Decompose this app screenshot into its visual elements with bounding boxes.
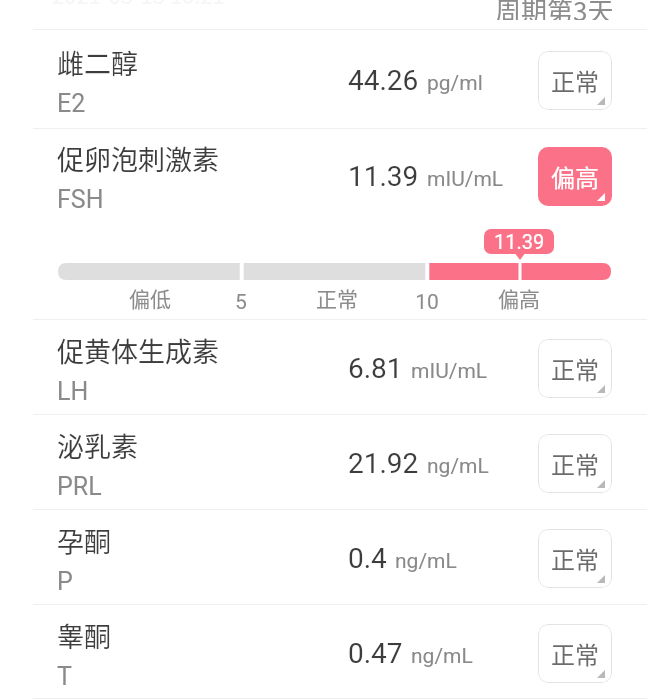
staticText: PRL <box>57 472 102 501</box>
button[interactable]: 正常 状态 <box>538 624 612 683</box>
staticText: 偏低 <box>129 283 171 313</box>
staticText: 正常 <box>551 446 599 481</box>
staticText: 孕酮 <box>57 521 111 560</box>
staticText: 10 <box>415 290 439 315</box>
button[interactable]: 正常 状态 <box>538 434 612 493</box>
staticText: 0.4 <box>348 542 387 575</box>
button[interactable]: 泌乳素 <box>0 414 647 509</box>
button[interactable]: 正常 状态 <box>538 51 612 110</box>
staticText: 5 <box>235 290 247 315</box>
button[interactable]: 促黄体生成素 <box>0 319 647 414</box>
staticText: 2021-03-15 10:21 <box>52 0 225 7</box>
button[interactable]: 促卵泡刺激素 <box>0 128 647 220</box>
staticText: 正常 <box>551 351 599 386</box>
staticText: P <box>57 567 73 596</box>
staticText: 周期第3天 <box>495 0 614 20</box>
staticText: E2 <box>57 89 86 118</box>
button[interactable]: 偏高 状态 <box>538 147 612 206</box>
staticText: 11.39 <box>348 160 419 193</box>
staticText: ng/mL <box>395 549 457 574</box>
staticText: ng/mL <box>427 454 489 479</box>
button[interactable]: 正常 状态 <box>538 529 612 588</box>
staticText: T <box>57 662 72 691</box>
staticText: 促卵泡刺激素 <box>57 139 219 178</box>
staticText: 21.92 <box>348 447 419 480</box>
staticText: 0.47 <box>348 637 403 670</box>
staticText: 正常 <box>551 541 599 576</box>
button[interactable]: 雌二醇 <box>0 29 647 128</box>
staticText: pg/ml <box>427 71 483 96</box>
button[interactable]: 正常 状态 <box>538 339 612 398</box>
button[interactable]: 11.39 <box>484 229 554 254</box>
button[interactable]: 睾酮 <box>0 604 647 698</box>
staticText: LH <box>57 377 89 406</box>
staticText: mIU/mL <box>427 167 504 192</box>
staticText: FSH <box>57 185 104 214</box>
staticText: 睾酮 <box>57 616 111 655</box>
button[interactable]: 2021-03-15 10:21 <box>0 0 647 29</box>
staticText: 6.81 <box>348 352 403 385</box>
staticText: 正常 <box>551 63 599 98</box>
staticText: 雌二醇 <box>57 43 138 82</box>
staticText: 正常 <box>316 283 358 313</box>
staticText: 44.26 <box>348 64 419 97</box>
staticText: 促黄体生成素 <box>57 331 219 370</box>
staticText: 正常 <box>551 636 599 671</box>
staticText: 11.39 <box>494 230 545 253</box>
staticText: 泌乳素 <box>57 426 138 465</box>
staticText: 偏高 <box>551 159 599 194</box>
button[interactable]: 孕酮 <box>0 509 647 604</box>
staticText: mIU/mL <box>411 359 488 384</box>
staticText: ng/mL <box>411 644 473 669</box>
staticText: 偏高 <box>498 283 540 313</box>
